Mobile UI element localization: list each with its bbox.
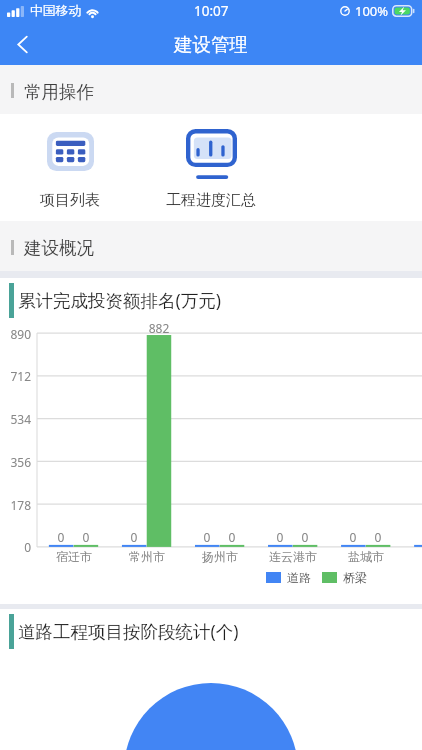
staticText: 桥梁 xyxy=(343,570,367,585)
staticText: 建设概况 xyxy=(24,237,94,259)
staticText: 扬州市 xyxy=(180,549,260,564)
staticText: 道路工程项目按阶段统计(个) xyxy=(18,619,239,643)
staticText: 100% xyxy=(355,2,389,20)
staticText: 712 xyxy=(0,368,31,384)
staticText: 178 xyxy=(0,497,31,513)
staticText: 0 xyxy=(114,529,154,545)
staticText: 0 xyxy=(0,539,31,555)
staticText: 356 xyxy=(0,454,31,470)
staticText: 常州市 xyxy=(107,549,187,564)
staticText: 0 xyxy=(66,529,106,545)
staticText: 盐城市 xyxy=(326,549,406,564)
staticText: 0 xyxy=(212,529,252,545)
button[interactable]: Back xyxy=(2,24,42,65)
button[interactable]: 项目列表 xyxy=(18,114,122,221)
staticText: 0 xyxy=(260,529,300,545)
staticText: 连云港市 xyxy=(253,549,333,564)
button[interactable]: 工程进度汇总 xyxy=(159,114,263,221)
staticText: 0 xyxy=(187,529,227,545)
staticText: 10:07 xyxy=(194,2,229,20)
staticText: 宿迁市 xyxy=(34,549,114,564)
staticText: 0 xyxy=(285,529,325,545)
staticText: 882 xyxy=(139,320,179,336)
staticText: 0 xyxy=(333,529,373,545)
staticText: 项目列表 xyxy=(40,191,100,210)
staticText: 中国移动 xyxy=(30,3,82,19)
staticText: 常用操作 xyxy=(24,81,94,103)
staticText: 累计完成投资额排名(万元) xyxy=(18,288,221,312)
staticText: 工程进度汇总 xyxy=(166,191,256,210)
staticText: 534 xyxy=(0,411,31,427)
staticText: 道路 xyxy=(287,570,311,585)
staticText: 0 xyxy=(41,529,81,545)
staticText: 0 xyxy=(358,529,398,545)
staticText: 890 xyxy=(0,326,31,342)
staticText: 建设管理 xyxy=(174,33,248,56)
